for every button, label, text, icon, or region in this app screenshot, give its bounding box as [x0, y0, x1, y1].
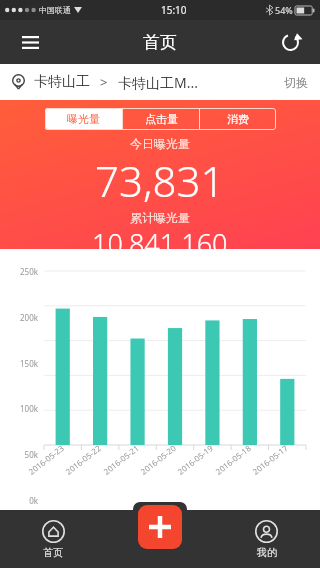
staticText: 10,841,160	[92, 225, 228, 249]
staticText: 200k	[4, 312, 38, 323]
staticText: 2016-05-20	[138, 442, 178, 477]
staticText: 0k	[4, 495, 38, 506]
button[interactable]: 曝光量	[45, 108, 122, 130]
staticText: 15:10	[161, 3, 187, 17]
staticText: 2016-05-21	[101, 442, 141, 477]
button[interactable]: 点击量	[123, 108, 199, 130]
staticText: 73,831	[95, 152, 225, 209]
staticText: 切换	[284, 75, 308, 90]
staticText: >	[100, 73, 108, 91]
button[interactable]: 首页	[0, 510, 106, 568]
staticText: 点击量	[145, 112, 178, 126]
staticText: 2016-05-23	[26, 442, 66, 477]
staticText: 首页	[143, 32, 177, 53]
button[interactable]: 卡特山工	[0, 64, 320, 100]
staticText: 曝光量	[67, 112, 100, 126]
staticText: 首页	[43, 546, 63, 559]
staticText: 2016-05-22	[63, 442, 103, 477]
button[interactable]: Refresh	[268, 20, 312, 64]
staticText: 2016-05-17	[250, 442, 290, 477]
button[interactable]: 我的	[213, 510, 320, 568]
button[interactable]: 消费	[200, 108, 276, 130]
staticText: 我的	[257, 546, 277, 559]
button[interactable]: Add	[138, 505, 182, 549]
staticText: 54%	[275, 4, 293, 16]
staticText: 2016-05-18	[213, 442, 253, 477]
staticText: 中国联通	[39, 5, 71, 15]
button[interactable]: Menu	[8, 20, 52, 64]
staticText: 2016-05-19	[175, 442, 215, 477]
staticText: 今日曝光量	[130, 136, 190, 151]
staticText: 150k	[4, 358, 38, 369]
staticText: 卡特山工	[34, 73, 90, 91]
staticText: 卡特山工M...	[118, 73, 198, 92]
staticText: 100k	[4, 403, 38, 414]
staticText: 消费	[227, 112, 249, 126]
staticText: 250k	[4, 266, 38, 277]
staticText: 累计曝光量	[130, 210, 190, 225]
staticText: 50k	[4, 449, 38, 460]
